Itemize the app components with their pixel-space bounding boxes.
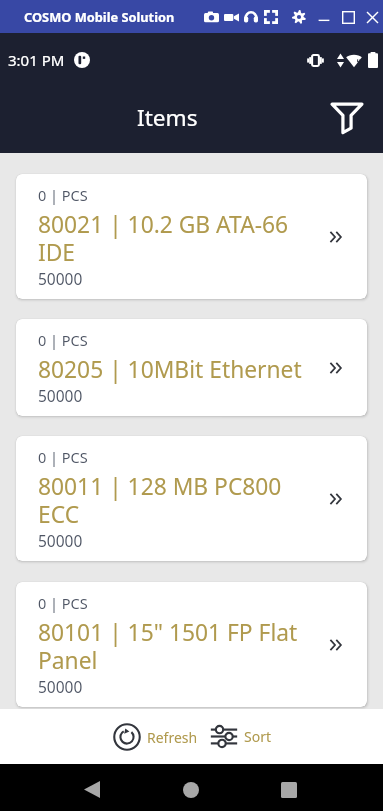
staticText: 80101 | 15" 1501 FP Flat Panel	[38, 617, 310, 676]
staticText: 0 | PCS	[38, 447, 88, 467]
button[interactable]: Sort	[204, 719, 277, 754]
button[interactable]: Fullscreen	[261, 5, 281, 29]
staticText: Sort	[244, 727, 271, 746]
button[interactable]: Filter	[325, 94, 369, 138]
button[interactable]: Back	[68, 766, 116, 811]
button[interactable]: Refresh	[107, 717, 204, 757]
button[interactable]: Audio	[241, 5, 261, 29]
staticText: 80011 | 128 MB PC800 ECC	[38, 471, 310, 530]
button[interactable]: Home	[167, 766, 215, 811]
button[interactable]: Maximize	[338, 5, 358, 29]
staticText: 50000	[38, 676, 83, 697]
staticText: 50000	[38, 268, 83, 289]
button[interactable]: Close	[362, 5, 382, 29]
staticText: 0 | PCS	[38, 593, 88, 613]
button[interactable]: Take screenshot	[201, 5, 221, 29]
button[interactable]: Minimize	[314, 5, 334, 29]
button[interactable]: 0 | PCS	[16, 436, 367, 561]
staticText: Items	[137, 102, 198, 133]
staticText: 80205 | 10MBit Ethernet	[38, 354, 302, 385]
staticText: 50000	[38, 530, 83, 551]
staticText: COSMO Mobile Solution	[24, 8, 175, 25]
button[interactable]: 0 | PCS	[16, 319, 367, 416]
staticText: Refresh	[147, 728, 198, 747]
button[interactable]: Settings	[289, 5, 309, 29]
button[interactable]: 0 | PCS	[16, 582, 367, 707]
staticText: 0 | PCS	[38, 330, 88, 350]
staticText: 0 | PCS	[38, 185, 88, 205]
button[interactable]: Record screen	[221, 5, 241, 29]
staticText: 3:01 PM	[8, 50, 65, 70]
button[interactable]: Recent apps	[265, 766, 313, 811]
button[interactable]: 0 | PCS	[16, 174, 367, 299]
staticText: 50000	[38, 385, 83, 406]
staticText: 80021 | 10.2 GB ATA-66 IDE	[38, 209, 310, 268]
